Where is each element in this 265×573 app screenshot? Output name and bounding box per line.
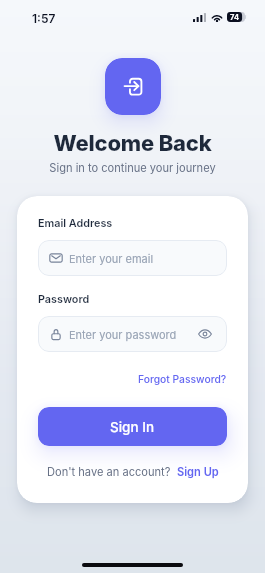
other: App logo [105,58,161,115]
staticText: Enter your password [69,328,177,341]
staticText: Welcome Back [0,130,265,157]
staticText: Enter your email [69,252,154,265]
staticText: Sign Up [177,465,219,478]
button[interactable]: Show password [195,324,215,344]
button[interactable]: Forgot Password? [136,371,229,387]
staticText: 74 [230,13,239,22]
staticText: Sign in to continue your journey [0,161,265,174]
staticText: Forgot Password? [138,373,227,385]
staticText: Don't have an account? [47,465,171,478]
button[interactable]: Sign Up [177,465,219,478]
button[interactable]: Sign In [38,407,227,446]
button[interactable]: Enter your email [38,240,227,276]
staticText: Password [38,293,90,306]
staticText: 1:57 [32,11,56,26]
staticText: Email Address [38,217,113,230]
staticText: Sign In [110,419,155,435]
button[interactable]: Enter your password [38,316,227,352]
